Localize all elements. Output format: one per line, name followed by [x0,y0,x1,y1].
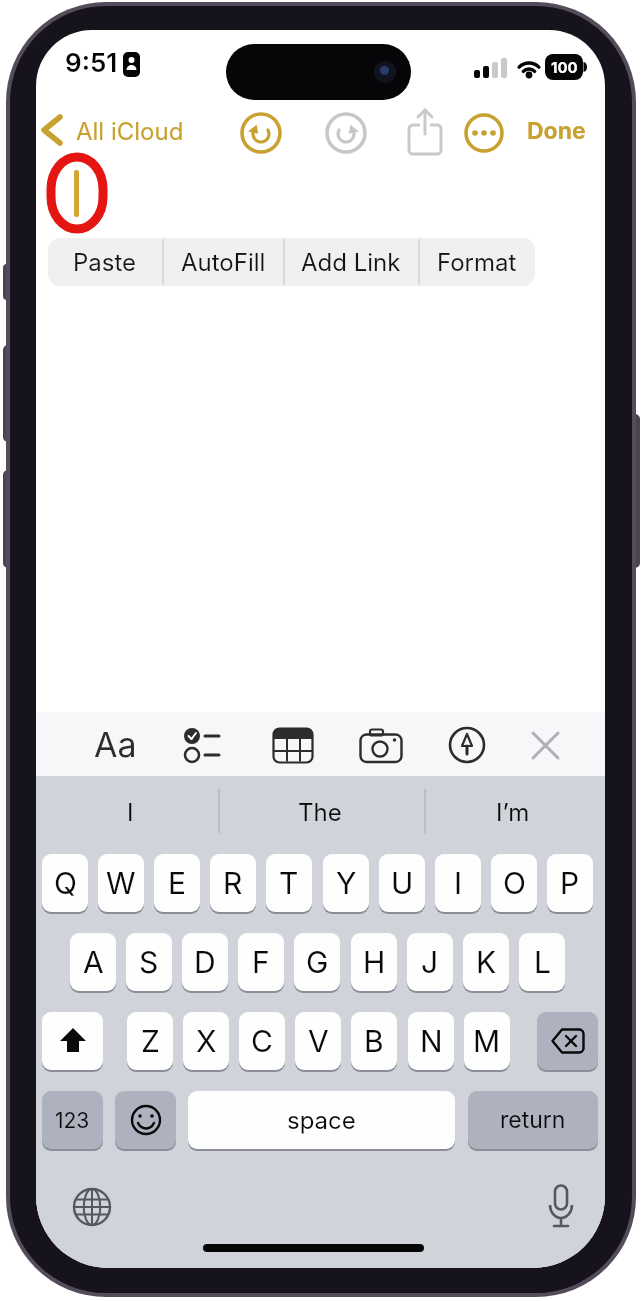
button[interactable]: Aa [90,716,140,772]
staticText: All iCloud [76,117,184,146]
button[interactable]: Paste [48,238,162,286]
button[interactable]: S [126,933,172,991]
staticText: J [421,944,439,980]
button[interactable]: C [239,1012,285,1070]
button[interactable]: K [463,933,509,991]
staticText: Done [527,117,586,145]
staticText: AutoFill [181,248,266,277]
staticText: I [127,798,134,827]
staticText: Q [54,865,77,901]
staticText: 9:51 [65,47,118,78]
button[interactable]: H [351,933,397,991]
button[interactable]: X [183,1012,229,1070]
staticText: The [298,798,342,827]
button[interactable] [537,1012,598,1070]
button[interactable] [325,112,367,154]
button[interactable]: J [407,933,453,991]
button[interactable] [42,1012,103,1070]
button[interactable] [183,727,221,764]
button[interactable]: space [188,1091,455,1149]
button[interactable]: Done [516,112,596,150]
staticText: Add Link [301,248,401,277]
button[interactable]: Add Link [284,238,418,286]
staticText: 123 [55,1108,90,1133]
button[interactable]: E [154,854,200,912]
staticText: P [560,865,580,901]
staticText: Format [437,248,517,277]
button[interactable]: G [294,933,340,991]
button[interactable] [115,1091,176,1149]
button[interactable]: L [519,933,565,991]
staticText: F [252,944,270,980]
button[interactable]: R [210,854,256,912]
button[interactable] [448,726,486,764]
button[interactable]: I [80,790,180,834]
button[interactable] [545,1184,577,1230]
staticText: V [308,1023,329,1059]
staticText: return [500,1106,566,1134]
staticText: Paste [73,248,137,277]
staticText: W [106,865,136,901]
button[interactable]: D [182,933,228,991]
staticText: C [251,1023,273,1059]
button[interactable]: F [238,933,284,991]
staticText: Y [336,865,357,901]
staticText: S [139,944,159,980]
staticText: I [454,865,463,901]
staticText: G [306,944,329,980]
button[interactable] [240,112,282,154]
staticText: A [83,944,104,980]
button[interactable] [272,727,314,764]
staticText: X [196,1023,217,1059]
button[interactable]: T [266,854,312,912]
staticText: E [168,865,187,901]
button[interactable]: Q [42,854,88,912]
staticText: R [223,865,243,901]
staticText: D [194,944,216,980]
button[interactable] [359,727,403,764]
staticText: I’m [496,798,530,827]
button[interactable]: V [295,1012,341,1070]
button[interactable]: return [468,1091,598,1149]
staticText: H [363,944,386,980]
button[interactable]: I [435,854,481,912]
button[interactable]: 123 [42,1091,103,1149]
button[interactable]: Format [419,238,535,286]
button[interactable]: AutoFill [163,238,283,286]
staticText: Z [141,1023,160,1059]
button[interactable] [464,113,504,153]
button[interactable]: The [240,790,400,834]
staticText: K [476,944,497,980]
button[interactable] [407,108,443,156]
staticText: O [503,865,526,901]
staticText: U [391,865,414,901]
button[interactable] [530,730,561,761]
staticText: L [534,944,551,980]
button[interactable]: N [408,1012,454,1070]
staticText: B [364,1023,384,1059]
staticText: space [287,1106,356,1135]
button[interactable]: O [491,854,537,912]
staticText: N [420,1023,443,1059]
button[interactable]: All iCloud [76,112,236,150]
staticText: 100 [551,58,578,76]
button[interactable]: W [98,854,144,912]
button[interactable]: Z [127,1012,173,1070]
button[interactable] [72,1187,112,1227]
button[interactable]: Y [323,854,369,912]
button[interactable]: I’m [455,790,570,834]
button[interactable]: P [547,854,593,912]
button[interactable]: M [464,1012,510,1070]
staticText: Aa [94,724,137,765]
button[interactable]: B [351,1012,397,1070]
button[interactable]: A [70,933,116,991]
staticText: T [279,865,299,901]
button[interactable]: U [379,854,425,912]
staticText: M [473,1023,501,1059]
